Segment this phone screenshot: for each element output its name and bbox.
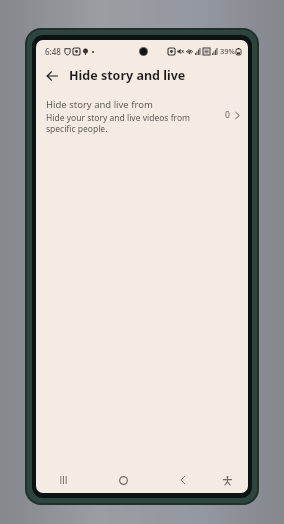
staticText: Hide story and live bbox=[69, 67, 186, 84]
button[interactable]: Accessibility bbox=[216, 469, 238, 491]
staticText: Hide story and live from bbox=[46, 98, 153, 111]
staticText: 0 bbox=[225, 109, 230, 121]
staticText: 6:48 bbox=[45, 46, 61, 57]
button[interactable]: Back bbox=[172, 469, 194, 491]
button[interactable]: Home bbox=[112, 469, 134, 491]
button[interactable]: Recents bbox=[52, 469, 74, 491]
staticText: 39% bbox=[220, 46, 235, 56]
staticText: Hide your story and live videos from spe… bbox=[46, 112, 219, 134]
button[interactable]: Back bbox=[41, 65, 63, 87]
button[interactable]: Hide story and live from bbox=[36, 95, 248, 140]
